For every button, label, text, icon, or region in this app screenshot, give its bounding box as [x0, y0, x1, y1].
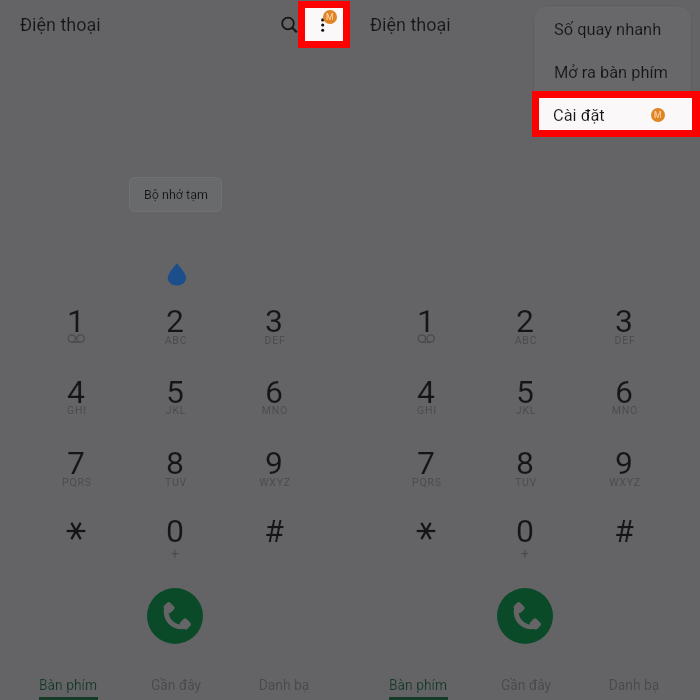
button[interactable]: More options [298, 1, 350, 48]
staticText: 1 [36, 302, 116, 340]
staticText: ABC [136, 334, 216, 346]
staticText: 6 [234, 373, 314, 411]
button[interactable]: Số quay nhanh [554, 20, 662, 39]
staticText: 0 [135, 512, 215, 550]
staticText: 4 [36, 373, 116, 411]
staticText: GHI [37, 404, 117, 416]
staticText: PQRS [37, 476, 117, 488]
staticText: PQRS [387, 476, 467, 488]
staticText: 3 [584, 302, 664, 340]
button[interactable] [386, 295, 466, 351]
button[interactable]: Bàn phím [16, 668, 120, 700]
staticText: 0 [485, 512, 565, 550]
button[interactable]: Bộ nhớ tạm [129, 177, 222, 212]
button[interactable] [234, 366, 314, 422]
staticText: 7 [36, 444, 116, 482]
button[interactable] [584, 505, 664, 561]
staticText: 5 [135, 373, 215, 411]
button[interactable]: Gần đây [474, 668, 578, 700]
button[interactable]: Danh bạ [582, 668, 686, 700]
button[interactable] [135, 366, 215, 422]
button[interactable] [234, 437, 314, 493]
button[interactable] [485, 437, 565, 493]
staticText: 6 [584, 373, 664, 411]
staticText: 1 [386, 302, 466, 340]
staticText: JKL [486, 404, 566, 416]
staticText: Danh bạ [582, 677, 686, 693]
staticText: TUV [486, 476, 566, 488]
button[interactable] [584, 366, 664, 422]
staticText: WXYZ [585, 476, 665, 488]
button[interactable] [234, 295, 314, 351]
button[interactable] [135, 505, 215, 561]
staticText: WXYZ [235, 476, 315, 488]
staticText: GHI [387, 404, 467, 416]
button[interactable] [584, 437, 664, 493]
button[interactable]: Search [274, 10, 302, 38]
staticText: Danh bạ [232, 677, 336, 693]
button[interactable] [135, 295, 215, 351]
staticText: 9 [584, 444, 664, 482]
staticText: 9 [234, 444, 314, 482]
button[interactable] [485, 366, 565, 422]
staticText: M [326, 12, 334, 22]
button[interactable]: Call [147, 588, 203, 644]
button[interactable] [135, 437, 215, 493]
staticText: Bàn phím [16, 677, 120, 693]
staticText: 2 [485, 302, 565, 340]
staticText: Cài đặt [553, 106, 605, 125]
staticText: 5 [485, 373, 565, 411]
button[interactable] [36, 437, 116, 493]
staticText: 7 [386, 444, 466, 482]
staticText: DEF [585, 334, 665, 346]
staticText: Gần đây [124, 677, 228, 693]
staticText: 8 [135, 444, 215, 482]
staticText: 2 [135, 302, 215, 340]
button[interactable]: Search [624, 10, 652, 38]
staticText: 3 [234, 302, 314, 340]
button[interactable]: Mở ra bàn phím [554, 63, 668, 82]
staticText: TUV [136, 476, 216, 488]
button[interactable]: Điện thoại [20, 14, 101, 35]
button[interactable] [36, 295, 116, 351]
staticText: MNO [585, 404, 665, 416]
staticText: ABC [486, 334, 566, 346]
button[interactable] [485, 505, 565, 561]
staticText: DEF [235, 334, 315, 346]
staticText: Gần đây [474, 677, 578, 693]
button[interactable]: Call [497, 588, 553, 644]
button[interactable] [386, 505, 466, 561]
button[interactable]: Gần đây [124, 668, 228, 700]
staticText: 8 [485, 444, 565, 482]
button[interactable]: Bàn phím [366, 668, 470, 700]
button[interactable] [386, 437, 466, 493]
button[interactable]: Điện thoại [370, 14, 451, 35]
staticText: JKL [136, 404, 216, 416]
staticText: # [584, 512, 664, 550]
button[interactable] [386, 366, 466, 422]
button[interactable]: Danh bạ [232, 668, 336, 700]
button[interactable] [36, 505, 116, 561]
button[interactable] [485, 295, 565, 351]
staticText: M [654, 110, 662, 120]
button[interactable]: Cài đặt [532, 91, 700, 137]
button[interactable] [234, 505, 314, 561]
staticText: # [234, 512, 314, 550]
staticText: MNO [235, 404, 315, 416]
button[interactable] [584, 295, 664, 351]
button[interactable] [36, 366, 116, 422]
staticText: Bộ nhớ tạm [144, 187, 208, 202]
staticText: Bàn phím [366, 677, 470, 693]
staticText: 4 [386, 373, 466, 411]
